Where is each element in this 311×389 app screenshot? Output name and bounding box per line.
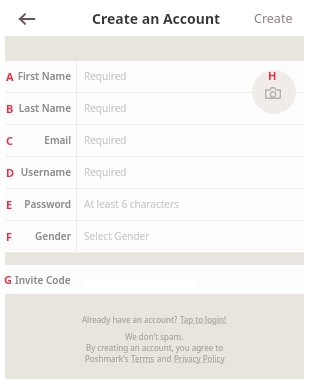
staticText: Last Name [13,101,71,115]
staticText: Required [84,165,127,179]
staticText: Privacy Policy [174,353,225,364]
staticText: Create [254,10,293,27]
button[interactable]: A [5,61,304,93]
staticText: and [155,353,174,364]
button[interactable]: Poshmark's [85,353,225,364]
staticText: H [268,70,277,83]
staticText: A [6,69,14,84]
button[interactable]: Add profile photo [252,70,296,114]
staticText: D [6,165,15,180]
staticText: Required [84,69,127,83]
button[interactable]: D [5,157,304,189]
staticText: Email [13,133,71,147]
button[interactable]: Back [12,5,38,31]
staticText: Required [84,101,127,115]
staticText: By creating an account, you agree to [86,342,224,353]
staticText: First Name [13,69,71,83]
staticText: Already have an account? [82,314,180,325]
staticText: Terms [131,353,155,364]
staticText: Create an Account [92,9,221,28]
button[interactable]: E [5,189,304,221]
staticText: Invite Code [15,273,71,287]
button[interactable]: Already have an account? [82,314,227,325]
staticText: Username [13,165,71,179]
staticText: Poshmark's [85,353,131,364]
staticText: E [6,197,13,212]
staticText: We don't spam. [125,331,184,342]
staticText: Password [13,197,71,211]
staticText: Select Gender [84,229,150,243]
staticText: B [6,101,14,116]
staticText: F [6,229,13,244]
button[interactable]: B [5,93,304,125]
button[interactable]: G [5,265,304,294]
staticText: Gender [13,229,71,243]
button[interactable]: C [5,125,304,157]
staticText: C [6,133,14,148]
button[interactable]: Create [250,4,297,33]
staticText: Required [84,133,127,147]
staticText: Tap to login! [180,314,227,325]
staticText: At least 6 characters [84,197,179,211]
staticText: G [4,272,12,287]
button[interactable]: F [5,221,304,253]
